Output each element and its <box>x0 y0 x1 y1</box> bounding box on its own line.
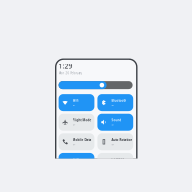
button[interactable]: Torch <box>59 153 94 170</box>
button[interactable]: Bluetooth <box>97 94 133 111</box>
button[interactable]: Flight Mode <box>59 114 94 131</box>
button[interactable]: Sound <box>97 114 133 131</box>
staticText: on <box>73 103 75 107</box>
staticText: Wifi <box>73 99 79 103</box>
button[interactable]: Location <box>97 153 133 170</box>
staticText: Location <box>111 157 124 161</box>
button[interactable]: Brightness <box>59 81 133 89</box>
staticText: Bluetooth <box>111 99 126 103</box>
button[interactable]: Auto Rotation <box>97 133 133 150</box>
staticText: off <box>73 123 76 126</box>
button[interactable]: Wifi <box>59 94 94 111</box>
staticText: Mon 26 February <box>59 71 82 75</box>
staticText: Mobile Data <box>73 138 92 142</box>
staticText: off <box>111 143 114 146</box>
staticText: Auto Rotation <box>111 138 132 142</box>
staticText: Flight Mode <box>73 118 92 122</box>
staticText: Sound <box>111 118 121 122</box>
staticText: on <box>111 103 113 107</box>
staticText: on <box>111 123 113 126</box>
staticText: Torch <box>73 157 80 161</box>
staticText: off <box>73 143 76 146</box>
button[interactable]: Mobile Data <box>59 133 94 150</box>
staticText: 1:29 <box>59 61 73 70</box>
